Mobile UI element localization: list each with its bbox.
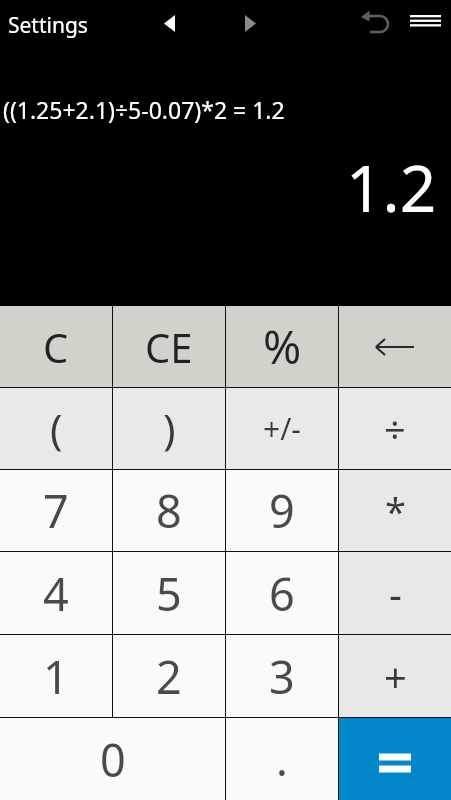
staticText: )	[163, 400, 176, 457]
button[interactable]: 1	[0, 635, 112, 717]
staticText: CE	[145, 320, 193, 374]
button[interactable]	[339, 306, 451, 387]
button[interactable]: 8	[113, 470, 225, 551]
staticText: 9	[269, 480, 295, 541]
staticText: 5	[156, 563, 182, 624]
button[interactable]: 9	[226, 470, 338, 551]
button[interactable]	[356, 2, 400, 46]
button[interactable]: 4	[0, 552, 112, 634]
staticText: +/-	[263, 408, 301, 449]
staticText: 8	[156, 480, 182, 541]
staticText: 4	[43, 563, 69, 624]
staticText: *	[385, 485, 406, 537]
staticText: 0	[100, 729, 126, 790]
button[interactable]: 2	[113, 635, 225, 717]
staticText: -	[389, 566, 402, 620]
button[interactable]: +	[339, 635, 451, 717]
button[interactable]: (	[0, 388, 112, 469]
staticText: 3	[269, 646, 295, 707]
button[interactable]: 3	[226, 635, 338, 717]
button[interactable]	[339, 718, 451, 800]
staticText: (	[50, 400, 63, 457]
button[interactable]: C	[0, 306, 112, 387]
button[interactable]: .	[226, 718, 338, 800]
staticText: 1	[43, 646, 69, 707]
staticText: .	[276, 729, 288, 789]
button[interactable]: CE	[113, 306, 225, 387]
button[interactable]: 7	[0, 470, 112, 551]
button[interactable]: 5	[113, 552, 225, 634]
staticText: 1.2	[346, 144, 437, 231]
staticText: +	[384, 649, 407, 703]
button[interactable]: )	[113, 388, 225, 469]
button[interactable]: %	[226, 306, 338, 387]
staticText: %	[263, 315, 302, 378]
staticText: 2	[156, 646, 182, 707]
staticText: ((1.25+2.1)÷5-0.07)*2 = 1.2	[3, 94, 285, 125]
button[interactable]: -	[339, 552, 451, 634]
button[interactable]: *	[339, 470, 451, 551]
button[interactable]: Settings	[0, 0, 98, 46]
button[interactable]: ÷	[339, 388, 451, 469]
button[interactable]: 0	[0, 718, 225, 800]
staticText: Settings	[8, 11, 88, 40]
button[interactable]	[230, 4, 270, 44]
staticText: 6	[269, 563, 295, 624]
button[interactable]	[402, 4, 448, 38]
staticText: ÷	[384, 403, 406, 455]
staticText: 7	[43, 480, 69, 541]
button[interactable]	[150, 4, 190, 44]
button[interactable]: +/-	[226, 388, 338, 469]
staticText: C	[43, 320, 69, 374]
button[interactable]: 6	[226, 552, 338, 634]
